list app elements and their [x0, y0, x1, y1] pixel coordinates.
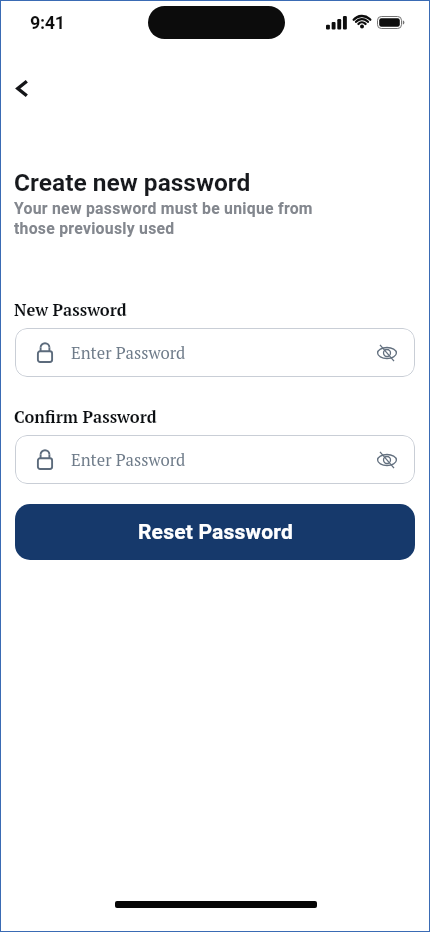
staticText: Enter Password: [71, 449, 186, 471]
button[interactable]: Enter Password: [15, 435, 415, 484]
staticText: New Password: [14, 299, 127, 321]
button[interactable]: Enter Password: [15, 328, 415, 377]
button[interactable]: Reset Password: [15, 504, 415, 560]
staticText: Reset Password: [138, 520, 293, 545]
staticText: Your new password must be unique from th…: [14, 199, 313, 238]
staticText: Confirm Password: [14, 406, 157, 428]
staticText: 9:41: [30, 12, 65, 33]
staticText: Create new password: [14, 168, 251, 197]
button[interactable]: [6, 72, 38, 104]
staticText: Enter Password: [71, 342, 186, 364]
